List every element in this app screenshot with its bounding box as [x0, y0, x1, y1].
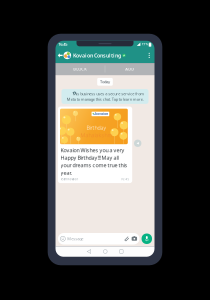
staticText: ADD: [125, 66, 134, 72]
staticText: 99%: [141, 42, 147, 46]
staticText: Mahalakshmi: [80, 132, 113, 139]
button[interactable]: This business uses a secure service from…: [61, 89, 148, 104]
staticText: This business uses a secure service from…: [66, 91, 144, 102]
button[interactable]: More options: [146, 50, 153, 61]
staticText: Kovaion Wishes you a very Happy Birthday…: [61, 147, 128, 176]
button[interactable]: Back: [87, 249, 91, 254]
staticText: BLOCK: [73, 66, 87, 72]
staticText: Message: [67, 236, 83, 241]
staticText: Kovaion Consulting: [73, 52, 121, 59]
button[interactable]: Record voice message: [142, 233, 152, 244]
staticText: kovaion: [95, 112, 108, 116]
staticText: Birthday: [86, 124, 106, 131]
staticText: 16:45: [121, 177, 130, 181]
staticText: Today: [100, 79, 110, 84]
button[interactable]: ADD: [105, 63, 154, 75]
button[interactable]: Kovaion Consulting: [63, 50, 126, 61]
button[interactable]: Home: [103, 250, 107, 253]
staticText: Team Kovaion: [60, 177, 78, 181]
button[interactable]: Back: [57, 50, 63, 61]
staticText: 16:45: [58, 42, 67, 47]
button[interactable]: BLOCK: [55, 63, 105, 75]
button[interactable]: Recent apps: [119, 250, 123, 253]
